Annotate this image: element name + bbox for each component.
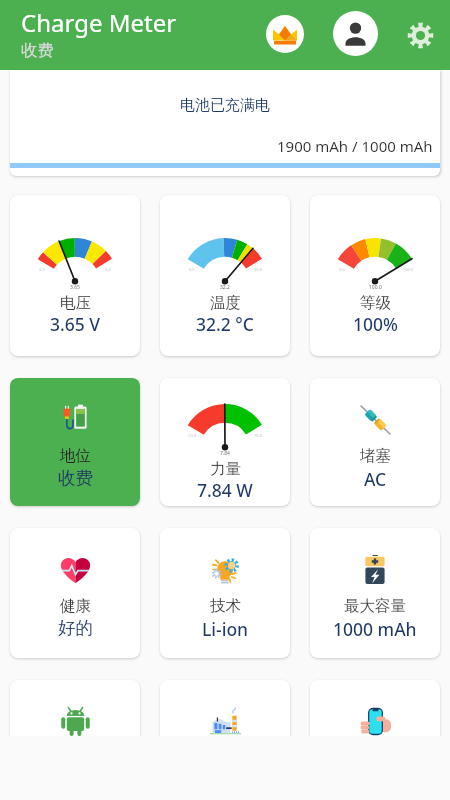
button[interactable]: Account [330, 8, 380, 58]
button[interactable] [10, 680, 140, 800]
staticText: -10.0 [187, 433, 197, 438]
button[interactable]: 地位 [10, 378, 140, 506]
button[interactable]: 3.65 [10, 195, 140, 356]
button[interactable]: 7.84 [160, 378, 290, 506]
staticText: 力量 [210, 459, 241, 479]
button[interactable]: 堵塞 [310, 378, 440, 506]
staticText: 32.2 °C [196, 312, 254, 336]
staticText: 收费 [21, 40, 54, 61]
staticText: 100.0 [403, 267, 414, 272]
staticText: 0.0 [189, 267, 195, 272]
staticText: 50.0 [254, 267, 262, 272]
staticText: 1900 mAh / 1000 mAh [277, 136, 433, 156]
staticText: 电池已充满电 [180, 96, 270, 115]
button[interactable]: Settings [398, 13, 442, 57]
staticText: 0.0 [339, 267, 345, 272]
staticText: 温度 [210, 293, 241, 313]
staticText: 电压 [60, 293, 91, 313]
staticText: 3.0 [39, 267, 45, 272]
staticText: 技术 [210, 596, 241, 616]
staticText: 3.65 V [50, 312, 101, 336]
staticText: 地位 [60, 446, 91, 466]
button[interactable]: 健康 [10, 528, 140, 658]
staticText: 收费 [58, 467, 93, 489]
staticText: 100% [353, 312, 398, 336]
button[interactable]: Premium [262, 11, 308, 57]
staticText: 7.84 W [197, 478, 253, 502]
button[interactable]: 32.2 [160, 195, 290, 356]
button[interactable] [160, 680, 290, 800]
staticText: 健康 [60, 596, 91, 616]
staticText: 等级 [360, 293, 391, 313]
staticText: Li-ion [202, 617, 249, 641]
button[interactable] [310, 680, 440, 800]
staticText: 好的 [58, 617, 93, 639]
staticText: 32.2 [220, 284, 230, 291]
staticText: 3.65 [70, 284, 80, 291]
staticText: 7.84 [220, 450, 230, 457]
staticText: 10.0 [254, 433, 262, 438]
staticText: 1000 mAh [333, 617, 417, 641]
button[interactable]: 技术 [160, 528, 290, 658]
staticText: Charge Meter [21, 6, 177, 39]
button[interactable]: 100.0 [310, 195, 440, 356]
staticText: 最大容量 [344, 596, 406, 616]
staticText: 4.4 [105, 267, 111, 272]
button[interactable]: 最大容量 [310, 528, 440, 658]
staticText: 堵塞 [360, 446, 391, 466]
staticText: AC [364, 467, 387, 491]
staticText: 100.0 [369, 284, 382, 291]
